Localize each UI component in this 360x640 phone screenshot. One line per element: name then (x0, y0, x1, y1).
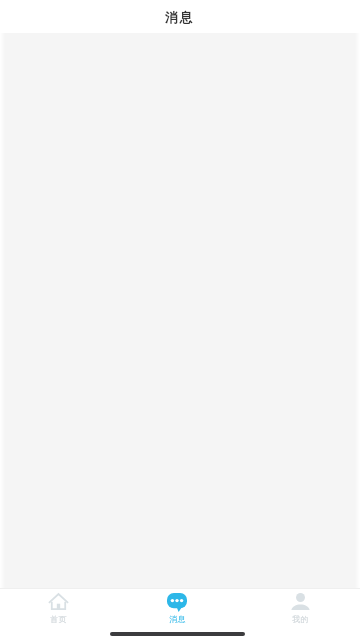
button[interactable]: 消息 (120, 589, 234, 640)
button[interactable]: 我的 (241, 589, 360, 640)
staticText: 消息 (169, 614, 186, 624)
staticText: 我的 (292, 614, 309, 624)
staticText: 首页 (50, 614, 67, 624)
other: 消息 (167, 593, 187, 612)
staticText: 消息 (165, 9, 195, 25)
other: 我的 (291, 593, 310, 610)
other: 首页 (48, 593, 69, 610)
button[interactable]: 首页 (0, 589, 117, 640)
